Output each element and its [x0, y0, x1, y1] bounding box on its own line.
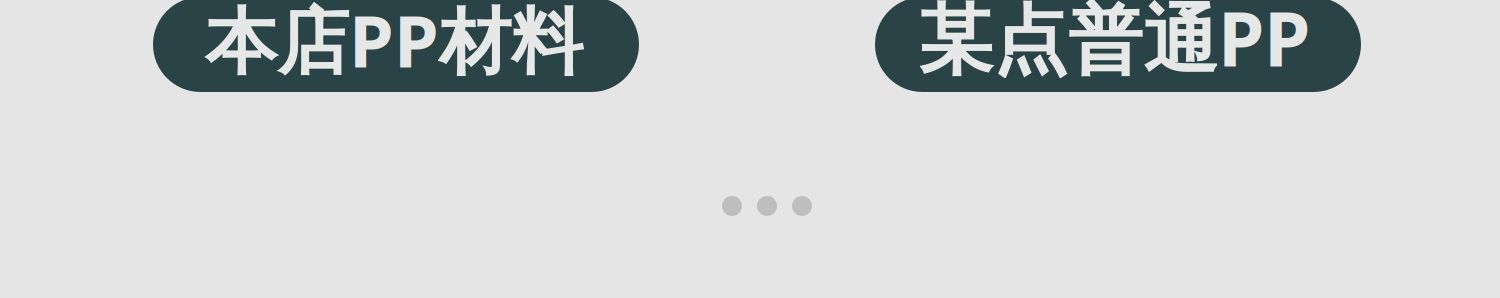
button[interactable]: 本店PP材料 — [153, 0, 639, 92]
button[interactable]: Page indicator, 3 pages — [712, 186, 822, 226]
button[interactable]: 某点普通PP — [875, 0, 1361, 92]
staticText: 某点普通PP — [918, 0, 1310, 87]
staticText: 本店PP材料 — [205, 0, 583, 87]
